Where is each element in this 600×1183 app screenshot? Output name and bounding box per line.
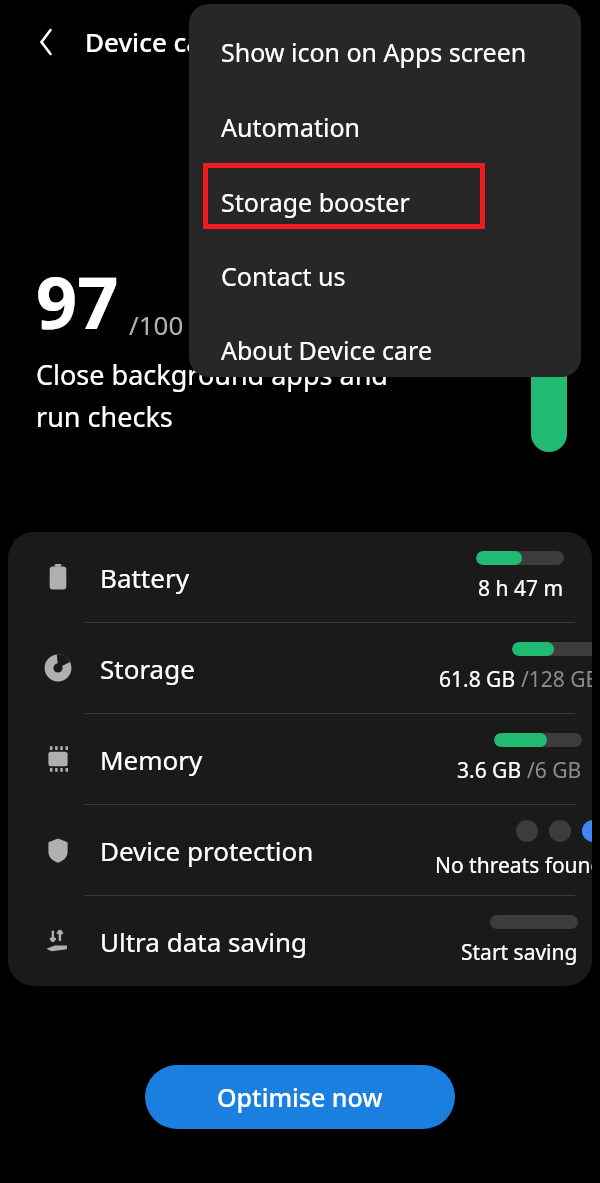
staticText: Device protection <box>100 833 314 868</box>
staticText: Automation <box>221 110 361 144</box>
staticText: Optimise now <box>217 1080 383 1114</box>
staticText: About Device care <box>221 333 433 367</box>
staticText: 3.6 GB <box>457 756 527 785</box>
staticText: Device care <box>85 24 227 59</box>
staticText: Start saving <box>461 938 578 967</box>
staticText: Storage booster <box>221 185 410 219</box>
button[interactable]: Contact us <box>189 248 581 304</box>
button[interactable]: Memory <box>8 714 592 804</box>
button[interactable]: Device protection <box>8 805 592 895</box>
button[interactable]: About Device care <box>189 322 581 377</box>
button[interactable]: Storage <box>8 623 592 713</box>
button[interactable]: Ultra data saving <box>8 896 592 986</box>
staticText: 8 h 47 m <box>478 574 564 603</box>
staticText: 61.8 GB <box>439 665 521 694</box>
button[interactable]: Optimise now <box>145 1065 455 1129</box>
staticText: Close background apps and <box>36 356 388 393</box>
staticText: Ultra data saving <box>100 924 307 959</box>
button[interactable]: Battery <box>8 532 592 622</box>
staticText: Memory <box>100 742 203 777</box>
staticText: /100 <box>129 307 184 342</box>
button[interactable]: Storage booster <box>189 174 581 230</box>
staticText: run checks <box>36 398 173 435</box>
button[interactable]: Back <box>26 22 66 62</box>
button[interactable]: Show icon on Apps screen <box>189 24 581 80</box>
button[interactable]: Automation <box>189 99 581 155</box>
staticText: Battery <box>100 560 189 595</box>
staticText: 97 <box>36 252 119 350</box>
staticText: Contact us <box>221 259 346 293</box>
staticText: Storage <box>100 651 195 686</box>
staticText: No threats found <box>435 851 592 880</box>
staticText: Show icon on Apps screen <box>221 35 527 69</box>
staticText: /6 GB <box>527 756 582 785</box>
staticText: /128 GB <box>521 665 592 694</box>
